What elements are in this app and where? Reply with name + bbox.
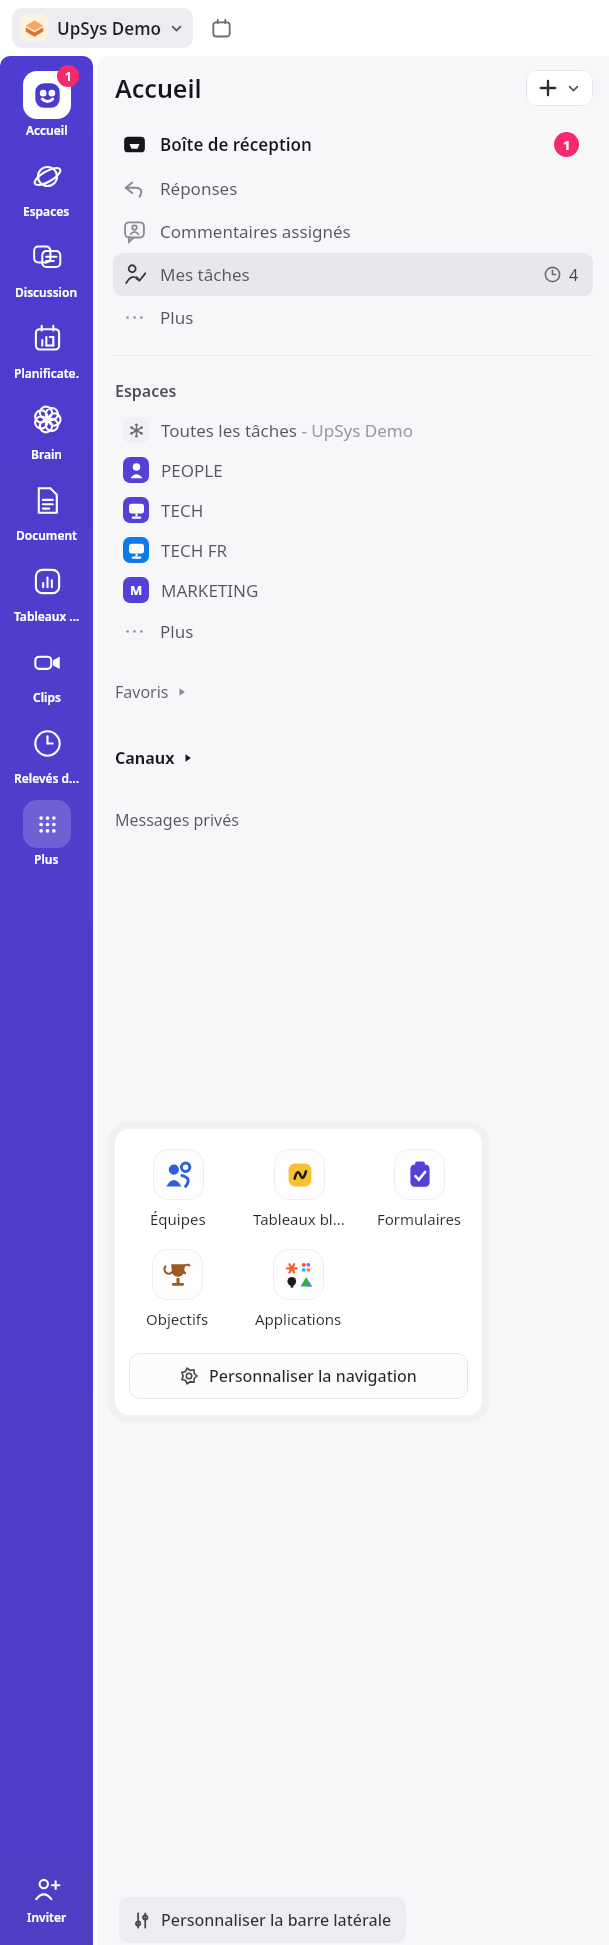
staticText: Toutes les tâches — [161, 419, 297, 442]
staticText: Relevés d... — [14, 770, 79, 786]
staticText: Clips — [33, 689, 61, 705]
button[interactable]: Commentaires assignés — [113, 210, 593, 253]
staticText: Mes tâches — [160, 263, 250, 286]
staticText: UpSys Demo — [57, 17, 162, 40]
staticText: Brain — [31, 446, 62, 462]
button[interactable]: M — [113, 570, 593, 610]
button[interactable]: Tableaux ... — [0, 550, 93, 631]
button[interactable]: Personnaliser la navigation — [129, 1353, 468, 1399]
button[interactable]: Inviter — [0, 1870, 93, 1931]
staticText: Personnaliser la barre latérale — [161, 1909, 392, 1931]
staticText: 1 — [563, 136, 571, 154]
staticText: PEOPLE — [161, 459, 223, 482]
staticText: - UpSys Demo — [297, 419, 413, 442]
button[interactable]: Canaux — [97, 745, 609, 771]
button[interactable]: Espaces — [0, 145, 93, 226]
staticText: Inviter — [27, 1909, 67, 1925]
staticText: Plus — [160, 620, 194, 643]
staticText: Espaces — [23, 203, 70, 219]
button[interactable]: Document — [0, 469, 93, 550]
button[interactable]: Tableaux bl... — [241, 1147, 357, 1231]
staticText: 1 — [65, 68, 72, 84]
button[interactable]: Planificate. — [0, 307, 93, 388]
staticText: Personnaliser la navigation — [209, 1365, 417, 1387]
staticText: TECH FR — [161, 539, 228, 562]
staticText: Accueil — [115, 71, 202, 105]
staticText: Espaces — [115, 380, 177, 402]
staticText: Tableaux ... — [14, 608, 80, 624]
staticText: Planificate. — [14, 365, 79, 381]
staticText: TECH — [161, 499, 204, 522]
button[interactable]: Relevés d... — [0, 712, 93, 793]
staticText: Messages privés — [115, 809, 239, 831]
staticText: Plus — [34, 851, 59, 867]
staticText: MARKETING — [161, 579, 259, 602]
button[interactable]: Formulaires — [361, 1147, 477, 1231]
button[interactable]: Plus — [0, 793, 93, 874]
button[interactable]: Plus — [113, 296, 593, 339]
button[interactable]: Réponses — [113, 167, 593, 210]
button[interactable]: Applications — [240, 1247, 356, 1331]
staticText: Favoris — [115, 681, 169, 703]
button[interactable]: Clips — [0, 631, 93, 712]
button[interactable]: Personnaliser la barre latérale — [119, 1897, 406, 1943]
staticText: Canaux — [115, 747, 175, 769]
staticText: Plus — [160, 306, 194, 329]
staticText: Accueil — [26, 122, 68, 138]
button[interactable]: Équipes — [120, 1147, 236, 1231]
staticText: Discussion — [15, 284, 78, 300]
staticText: Applications — [255, 1309, 342, 1329]
staticText: M — [130, 581, 143, 599]
button[interactable]: Créer — [526, 70, 593, 106]
staticText: Formulaires — [377, 1209, 462, 1229]
staticText: Équipes — [150, 1209, 206, 1229]
button[interactable]: Plus — [113, 610, 593, 653]
button[interactable]: PEOPLE — [113, 450, 593, 490]
button[interactable]: TECH FR — [113, 530, 593, 570]
button[interactable]: Objectifs — [119, 1247, 235, 1331]
button[interactable]: Mes tâches — [113, 253, 593, 296]
staticText: Réponses — [160, 177, 238, 200]
staticText: 4 — [569, 264, 579, 286]
button[interactable]: Brain — [0, 388, 93, 469]
staticText: Boîte de réception — [160, 133, 312, 156]
button[interactable]: Calendrier — [205, 12, 237, 44]
button[interactable]: TECH — [113, 490, 593, 530]
staticText: Tableaux bl... — [253, 1209, 345, 1229]
button[interactable]: Discussion — [0, 226, 93, 307]
button[interactable]: 1 — [0, 64, 93, 145]
button[interactable]: UpSys Demo — [12, 8, 193, 48]
staticText: Objectifs — [146, 1309, 209, 1329]
button[interactable]: Toutes les tâches — [113, 410, 593, 450]
staticText: Document — [16, 527, 77, 543]
button[interactable]: Boîte de réception — [113, 122, 593, 167]
staticText: Commentaires assignés — [160, 220, 351, 243]
button[interactable]: Favoris — [97, 679, 609, 705]
